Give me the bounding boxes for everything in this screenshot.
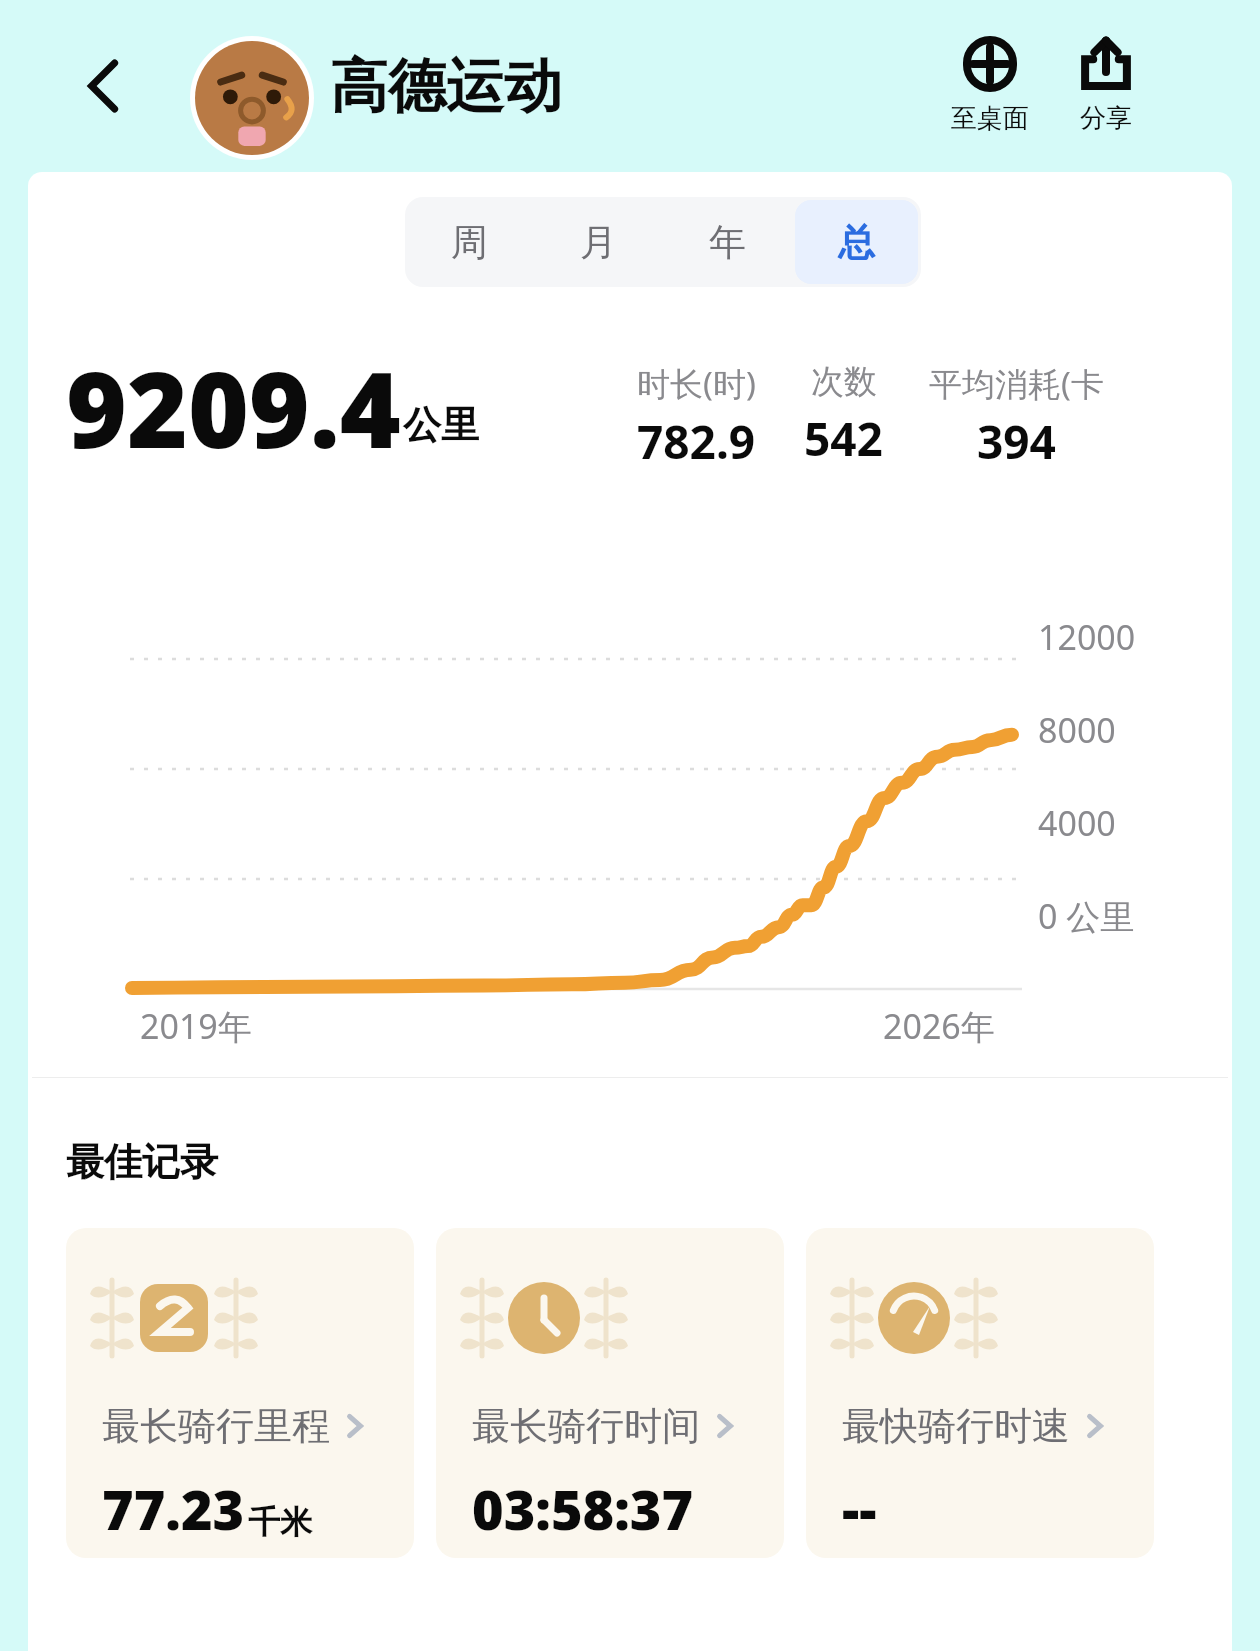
button[interactable]: 最长骑行里程	[66, 1228, 414, 1558]
staticText: 至桌面	[951, 102, 1029, 135]
button[interactable]: 最长骑行时间	[436, 1228, 784, 1558]
staticText: --	[842, 1472, 877, 1546]
button[interactable]: 年	[666, 200, 789, 284]
staticText: 分享	[1080, 102, 1132, 135]
staticText: 最佳记录	[66, 1138, 218, 1186]
staticText: 03:58:37	[472, 1472, 694, 1546]
staticText: 年	[709, 219, 746, 266]
button[interactable]: 周	[408, 200, 531, 284]
button[interactable]: 月	[537, 200, 660, 284]
button[interactable]: 平均消耗(卡	[901, 361, 1131, 473]
staticText: 月	[580, 219, 617, 266]
button[interactable]: 至桌面	[930, 36, 1050, 135]
staticText: 周	[451, 219, 488, 266]
staticText: 最长骑行时间	[472, 1402, 700, 1450]
button[interactable]: 分享	[1046, 36, 1166, 135]
staticText: 2026年	[883, 1003, 995, 1049]
staticText: 时长(时)	[637, 361, 756, 406]
button[interactable]	[190, 36, 314, 160]
staticText: 782.9	[637, 410, 756, 473]
staticText: 77.23	[102, 1472, 245, 1546]
staticText: 4000	[1038, 800, 1116, 846]
staticText: 总	[838, 219, 875, 266]
button[interactable]: 最快骑行时速	[806, 1228, 1154, 1558]
staticText: 千米	[248, 1502, 312, 1542]
staticText: 542	[804, 407, 883, 470]
staticText: 394	[977, 410, 1056, 473]
staticText: 0 公里	[1038, 893, 1135, 939]
staticText: 平均消耗(卡	[929, 361, 1104, 406]
button[interactable]: 总	[795, 200, 918, 284]
staticText: 12000	[1038, 614, 1136, 660]
staticText: 公里	[403, 401, 479, 449]
button[interactable]: Back	[70, 50, 142, 122]
staticText: 8000	[1038, 707, 1116, 753]
button[interactable]: 时长(时)	[606, 361, 786, 473]
staticText: 最快骑行时速	[842, 1402, 1070, 1450]
staticText: 最长骑行里程	[102, 1402, 330, 1450]
staticText: 9209.4	[66, 337, 401, 457]
staticText: 次数	[811, 361, 877, 403]
staticText: 高德运动	[330, 50, 562, 123]
button[interactable]: 次数	[786, 361, 901, 470]
staticText: 2019年	[140, 1003, 252, 1049]
